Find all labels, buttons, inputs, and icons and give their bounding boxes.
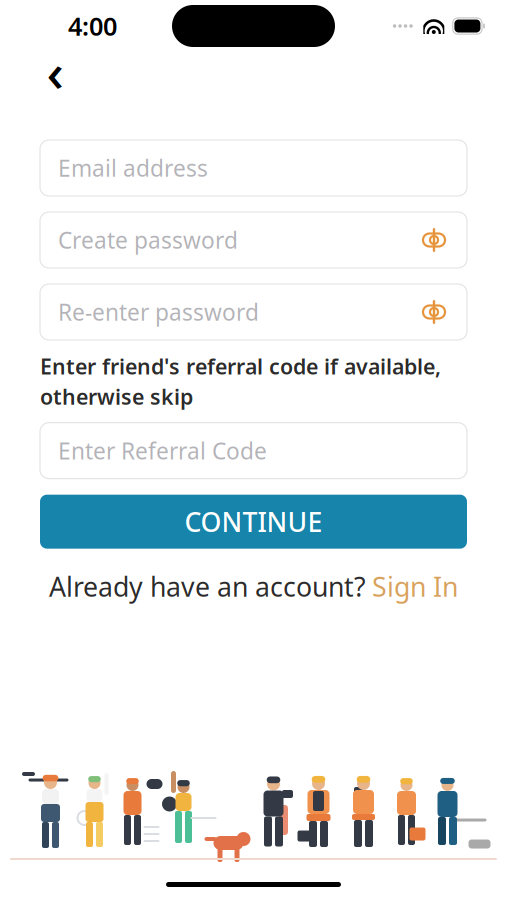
staticText: ‹ (46, 36, 63, 106)
button[interactable]: Back (38, 54, 72, 88)
button[interactable]: Show password (419, 300, 449, 324)
button[interactable]: Show password (419, 228, 449, 252)
staticText: Create password (58, 225, 238, 255)
staticText: Email address (58, 153, 208, 183)
staticText: Re-enter password (58, 297, 259, 327)
staticText: 4:00 (68, 9, 117, 43)
staticText: otherwise skip (40, 382, 193, 411)
staticText: Already have an account? (49, 569, 366, 604)
staticText: Enter Referral Code (58, 436, 267, 466)
button[interactable]: CONTINUE (40, 495, 467, 549)
staticText: CONTINUE (184, 504, 322, 539)
staticText: Sign In (372, 569, 458, 604)
button[interactable]: Already have an account? (49, 563, 458, 610)
staticText: Enter friend's referral code if availabl… (40, 352, 441, 380)
